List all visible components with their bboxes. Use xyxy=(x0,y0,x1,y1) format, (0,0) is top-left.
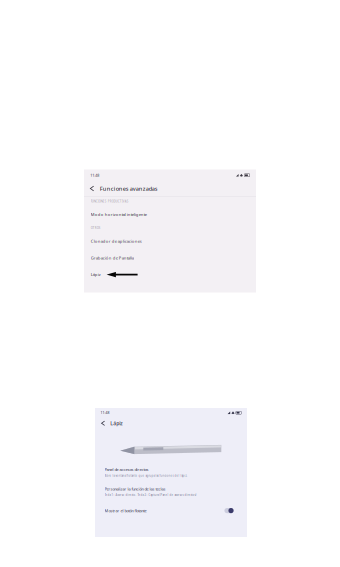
staticText: 11:48 xyxy=(90,173,99,178)
staticText: 11:48 xyxy=(101,410,110,415)
staticText: Grabación de Pantalla xyxy=(91,255,134,261)
staticText: Panel de accesos directos xyxy=(105,467,149,472)
staticText: FUNCIONES PRODUCTIVAS xyxy=(91,199,129,203)
button[interactable]: Personalizar la función de las teclas xyxy=(95,482,247,501)
staticText: Tecla 1: Acceso directo. Tecla 2: Captur… xyxy=(105,493,197,497)
button[interactable]: Grabación de Pantalla xyxy=(84,249,256,266)
staticText: Lápiz xyxy=(110,420,122,427)
staticText: Abre la ventana flotante que agrupa las … xyxy=(105,474,188,477)
button[interactable]: Modo horizontal inteligente xyxy=(84,206,256,223)
staticText: Funciones avanzadas xyxy=(100,185,158,192)
staticText: OTROS xyxy=(91,226,101,230)
button[interactable]: Panel de accesos directos xyxy=(95,462,247,482)
staticText: Mostrar el botón flotante xyxy=(105,508,147,513)
staticText: Lápiz xyxy=(91,272,101,277)
staticText: Personalizar la función de las teclas xyxy=(105,486,166,491)
button[interactable]: Lápiz xyxy=(84,266,256,283)
button[interactable]: Mostrar el botón flotante xyxy=(95,501,247,520)
staticText: Clonador de aplicaciones xyxy=(91,238,142,244)
button[interactable]: Lápiz xyxy=(95,417,247,429)
button[interactable]: Funciones avanzadas xyxy=(84,181,256,196)
button[interactable]: Clonador de aplicaciones xyxy=(84,233,256,249)
staticText: Modo horizontal inteligente xyxy=(91,212,147,217)
